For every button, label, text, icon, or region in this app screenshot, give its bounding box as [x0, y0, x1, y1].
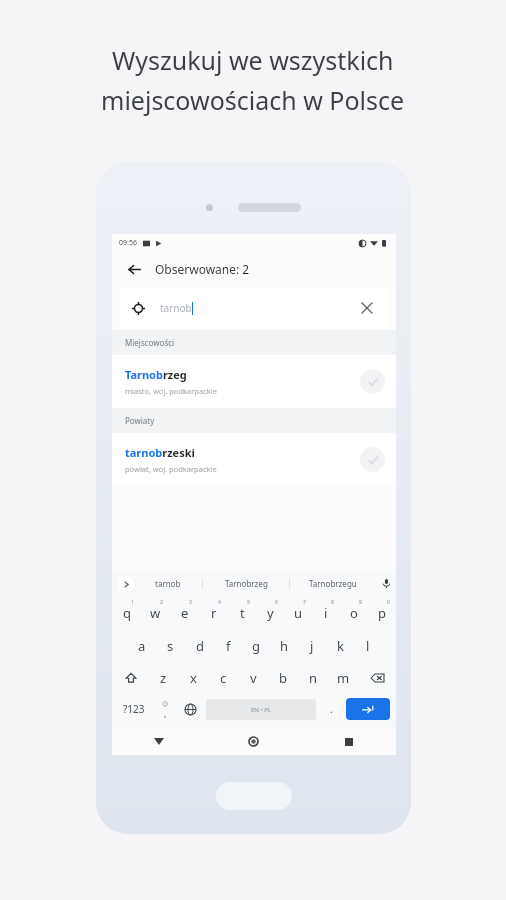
button[interactable]: f — [214, 629, 242, 662]
button[interactable]: ☺ — [152, 693, 178, 725]
button[interactable]: . — [319, 693, 344, 725]
button[interactable]: Shift — [112, 662, 149, 693]
staticText: 2 — [160, 599, 163, 606]
staticText: miejscowościach w Polsce — [101, 83, 405, 117]
staticText: powiat, woj. podkarpackie — [125, 464, 217, 474]
button[interactable]: Tarnobrzeg — [112, 355, 396, 408]
staticText: tarnobrzeski — [125, 445, 195, 460]
button[interactable]: p — [368, 596, 396, 629]
staticText: r — [211, 604, 217, 622]
staticText: m — [337, 669, 350, 687]
button[interactable]: Follow — [360, 369, 385, 394]
staticText: g — [252, 637, 260, 655]
staticText: x — [190, 669, 197, 687]
staticText: . — [330, 702, 333, 716]
staticText: 5 — [247, 599, 250, 606]
staticText: t — [240, 604, 245, 622]
button[interactable]: o — [340, 596, 368, 629]
button[interactable]: ?123 — [116, 693, 152, 725]
button[interactable]: e — [170, 596, 199, 629]
staticText: k — [337, 637, 344, 655]
staticText: c — [220, 669, 227, 687]
button[interactable]: tarnob — [121, 288, 387, 328]
staticText: y — [267, 604, 274, 622]
staticText: z — [160, 669, 167, 687]
staticText: 6 — [275, 599, 278, 606]
staticText: ☺ — [162, 700, 169, 707]
button[interactable]: i — [312, 596, 340, 629]
staticText: EN • PL — [251, 706, 272, 714]
button[interactable]: Back — [112, 728, 206, 755]
button[interactable]: Change language — [178, 693, 203, 725]
staticText: Wyszukuj we wszystkich — [112, 43, 394, 77]
staticText: Tarnobrzeg — [125, 367, 187, 382]
staticText: p — [378, 604, 386, 622]
button[interactable]: y — [256, 596, 284, 629]
button[interactable]: u — [284, 596, 312, 629]
button[interactable]: q — [112, 596, 141, 629]
button[interactable]: d — [185, 629, 214, 662]
button[interactable]: x — [178, 662, 208, 693]
button[interactable]: Enter — [346, 698, 390, 720]
staticText: Tarnobrzeg — [225, 578, 268, 589]
staticText: n — [309, 669, 318, 687]
staticText: tarnob — [155, 578, 181, 589]
staticText: ?123 — [123, 702, 145, 716]
button[interactable]: g — [242, 629, 270, 662]
staticText: b — [279, 669, 287, 687]
staticText: e — [181, 604, 189, 622]
staticText: v — [250, 669, 257, 687]
button[interactable]: Follow — [360, 447, 385, 472]
staticText: 4 — [218, 599, 221, 606]
staticText: i — [324, 604, 328, 622]
staticText: f — [226, 637, 231, 655]
staticText: h — [280, 637, 289, 655]
staticText: a — [138, 637, 146, 655]
button[interactable]: r — [199, 596, 228, 629]
button[interactable]: b — [268, 662, 298, 693]
button[interactable]: z — [149, 662, 178, 693]
button[interactable]: More suggestions — [118, 576, 134, 592]
button[interactable]: tarnob — [134, 571, 202, 596]
button[interactable]: k — [326, 629, 354, 662]
button[interactable]: Clear — [358, 299, 376, 317]
button[interactable]: Home — [206, 728, 301, 755]
button[interactable]: n — [298, 662, 328, 693]
staticText: d — [196, 637, 204, 655]
staticText: Tarnobrzegu — [309, 578, 357, 589]
button[interactable]: h — [270, 629, 298, 662]
button[interactable]: a — [127, 629, 156, 662]
staticText: q — [123, 604, 131, 622]
staticText: , — [164, 707, 167, 719]
staticText: s — [167, 637, 174, 655]
staticText: w — [150, 604, 161, 622]
staticText: o — [350, 604, 358, 622]
button[interactable]: m — [328, 662, 358, 693]
staticText: j — [310, 637, 314, 655]
button[interactable]: w — [141, 596, 170, 629]
button[interactable]: Back — [121, 256, 147, 282]
staticText: 9 — [359, 599, 362, 606]
button[interactable]: Tarnobrzegu — [290, 571, 376, 596]
button[interactable]: l — [354, 629, 382, 662]
staticText: 0 — [387, 599, 390, 606]
staticText: 1 — [131, 599, 134, 606]
staticText: Powiaty — [125, 415, 155, 426]
button[interactable]: Recents — [301, 728, 396, 755]
button[interactable]: s — [156, 629, 185, 662]
button[interactable]: Tarnobrzeg — [203, 571, 289, 596]
staticText: tarnob — [160, 301, 192, 315]
button[interactable]: tarnobrzeski — [112, 433, 396, 486]
staticText: 09:56 — [119, 238, 137, 248]
staticText: l — [366, 637, 370, 655]
button[interactable]: j — [298, 629, 326, 662]
button[interactable]: v — [238, 662, 268, 693]
staticText: 3 — [189, 599, 192, 606]
button[interactable]: Backspace — [358, 662, 396, 693]
staticText: 7 — [303, 599, 306, 606]
button[interactable]: EN • PL — [206, 699, 316, 720]
button[interactable]: c — [208, 662, 238, 693]
button[interactable]: t — [228, 596, 256, 629]
button[interactable]: Voice input — [376, 571, 396, 596]
staticText: miasto, woj. podkarpackie — [125, 386, 217, 396]
